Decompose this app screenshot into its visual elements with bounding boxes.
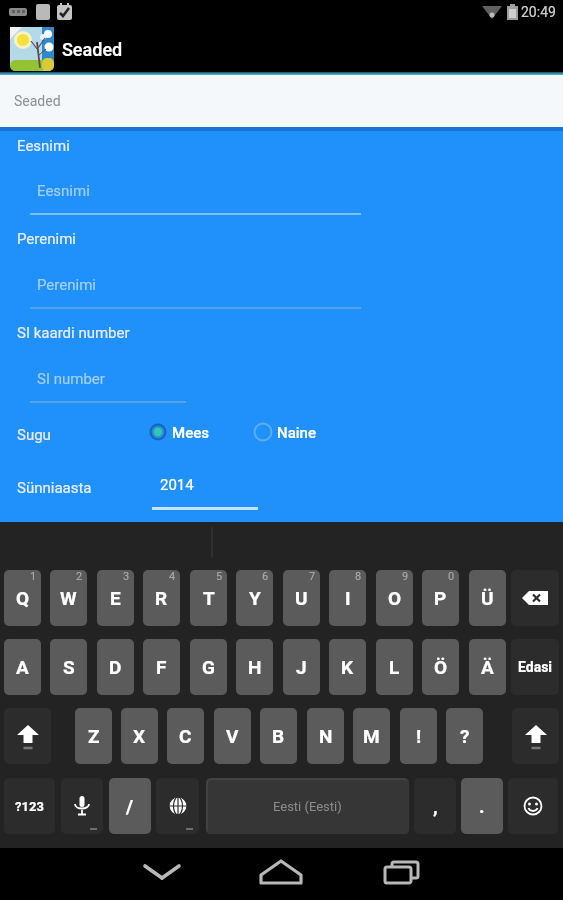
staticText: T — [203, 587, 215, 609]
staticText: U — [295, 587, 308, 609]
button[interactable] — [259, 855, 303, 891]
button[interactable]: C — [167, 708, 204, 764]
staticText: Eesnimi — [37, 182, 90, 200]
button[interactable]: . — [461, 778, 503, 834]
button[interactable]: G — [190, 639, 227, 695]
button[interactable]: Edasi — [511, 639, 559, 695]
button[interactable]: Ö — [422, 639, 459, 695]
button[interactable]: Seaded — [0, 75, 563, 127]
staticText: Mees — [172, 424, 209, 442]
staticText: Naine — [277, 424, 317, 442]
staticText: W — [60, 587, 77, 609]
staticText: 9 — [402, 570, 409, 583]
staticText: B — [272, 725, 285, 747]
button[interactable]: V — [214, 708, 251, 764]
staticText: O — [388, 587, 402, 609]
button[interactable]: O — [376, 570, 413, 626]
button[interactable]: S — [50, 639, 87, 695]
button[interactable]: Eesti (Eesti) — [206, 778, 409, 834]
button[interactable] — [156, 778, 199, 834]
button[interactable]: ?123 — [4, 778, 55, 834]
button[interactable]: X — [121, 708, 158, 764]
staticText: V — [226, 725, 239, 747]
button[interactable]: B — [260, 708, 297, 764]
staticText: R — [155, 587, 168, 609]
button[interactable]: F — [143, 639, 180, 695]
button[interactable]: W — [50, 570, 87, 626]
button[interactable]: ? — [446, 708, 483, 764]
staticText: D — [109, 656, 122, 678]
staticText: H — [248, 656, 262, 678]
button[interactable] — [61, 778, 103, 834]
button[interactable]: D — [97, 639, 134, 695]
button[interactable] — [4, 708, 51, 764]
button[interactable]: / — [109, 778, 151, 834]
staticText: 7 — [309, 570, 316, 583]
button[interactable]: K — [329, 639, 366, 695]
button[interactable]: , — [414, 778, 456, 834]
staticText: 2014 — [160, 476, 194, 494]
staticText: Sünniaasta — [17, 479, 92, 497]
staticText: I — [345, 587, 351, 609]
button[interactable]: R — [143, 570, 180, 626]
button[interactable]: I — [329, 570, 366, 626]
button[interactable]: Y — [236, 570, 273, 626]
button[interactable]: Q — [4, 570, 41, 626]
staticText: X — [133, 725, 146, 747]
staticText: / — [126, 795, 134, 817]
staticText: 3 — [123, 570, 130, 583]
staticText: SI number — [37, 370, 105, 388]
staticText: 20:49 — [521, 4, 556, 20]
staticText: Seaded — [14, 93, 61, 109]
staticText: C — [179, 725, 192, 747]
staticText: L — [389, 656, 400, 678]
staticText: 4 — [169, 570, 176, 583]
button[interactable] — [512, 708, 559, 764]
staticText: Sugu — [17, 426, 51, 444]
staticText: S — [63, 656, 75, 678]
staticText: M — [363, 725, 380, 747]
button[interactable]: Z — [75, 708, 112, 764]
staticText: 5 — [216, 570, 223, 583]
button[interactable] — [141, 856, 183, 890]
staticText: ? — [460, 725, 470, 747]
staticText: Seaded — [62, 39, 123, 60]
button[interactable]: A — [4, 639, 41, 695]
button[interactable]: J — [283, 639, 320, 695]
button[interactable]: U — [283, 570, 320, 626]
staticText: Perenimi — [37, 276, 96, 294]
button[interactable] — [148, 422, 210, 442]
button[interactable]: Ü — [469, 570, 506, 626]
button[interactable]: ! — [400, 708, 437, 764]
staticText: Eesti (Eesti) — [273, 799, 342, 814]
button[interactable] — [381, 855, 425, 891]
staticText: Ä — [481, 656, 494, 678]
staticText: Eesnimi — [17, 137, 70, 155]
button[interactable]: P — [422, 570, 459, 626]
button[interactable]: Ä — [469, 639, 506, 695]
button[interactable]: E — [97, 570, 134, 626]
staticText: Edasi — [518, 659, 553, 675]
staticText: SI kaardi number — [17, 324, 130, 342]
staticText: 6 — [262, 570, 269, 583]
staticText: ! — [416, 725, 422, 747]
button[interactable] — [253, 422, 319, 442]
staticText: E — [110, 587, 121, 609]
staticText: Ö — [434, 656, 448, 678]
staticText: 1 — [30, 570, 37, 583]
staticText: N — [319, 725, 333, 747]
button[interactable]: M — [353, 708, 390, 764]
button[interactable]: T — [190, 570, 227, 626]
staticText: G — [202, 656, 215, 678]
staticText: P — [434, 587, 447, 609]
button[interactable]: N — [307, 708, 344, 764]
staticText: , — [433, 795, 438, 817]
button[interactable] — [511, 570, 559, 626]
button[interactable]: L — [376, 639, 413, 695]
button[interactable]: H — [236, 639, 273, 695]
button[interactable] — [508, 778, 558, 834]
